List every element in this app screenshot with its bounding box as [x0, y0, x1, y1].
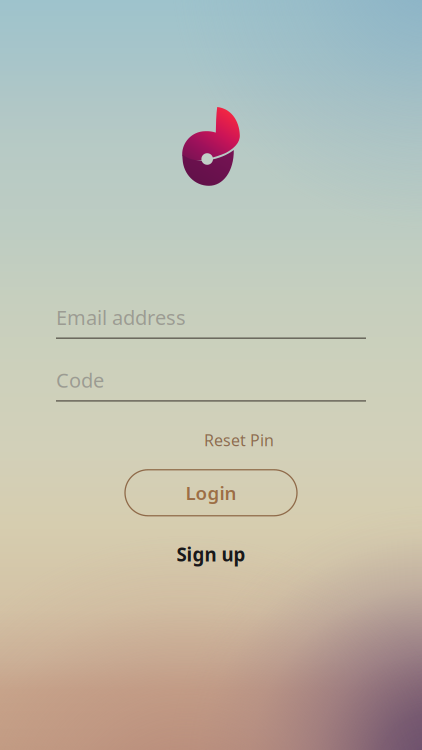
button[interactable]: Sign up: [166, 537, 255, 572]
staticText: Login: [185, 480, 236, 505]
button[interactable]: Login: [125, 470, 297, 516]
staticText: Email address: [56, 304, 186, 331]
button[interactable]: Reset Pin: [194, 424, 284, 456]
staticText: Code: [56, 367, 104, 393]
staticText: Sign up: [176, 542, 245, 567]
staticText: Reset Pin: [204, 429, 274, 451]
